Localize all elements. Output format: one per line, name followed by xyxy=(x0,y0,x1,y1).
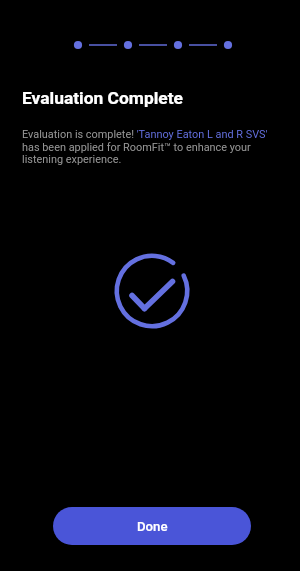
staticText: Evaluation is complete! 'Tannoy Eaton L … xyxy=(22,128,278,165)
other: Step 4 of 4 xyxy=(0,0,300,88)
staticText: Done xyxy=(137,519,168,534)
staticText: Evaluation Complete xyxy=(22,88,183,108)
other: Evaluation complete xyxy=(105,246,195,336)
button[interactable]: Done xyxy=(53,507,251,545)
